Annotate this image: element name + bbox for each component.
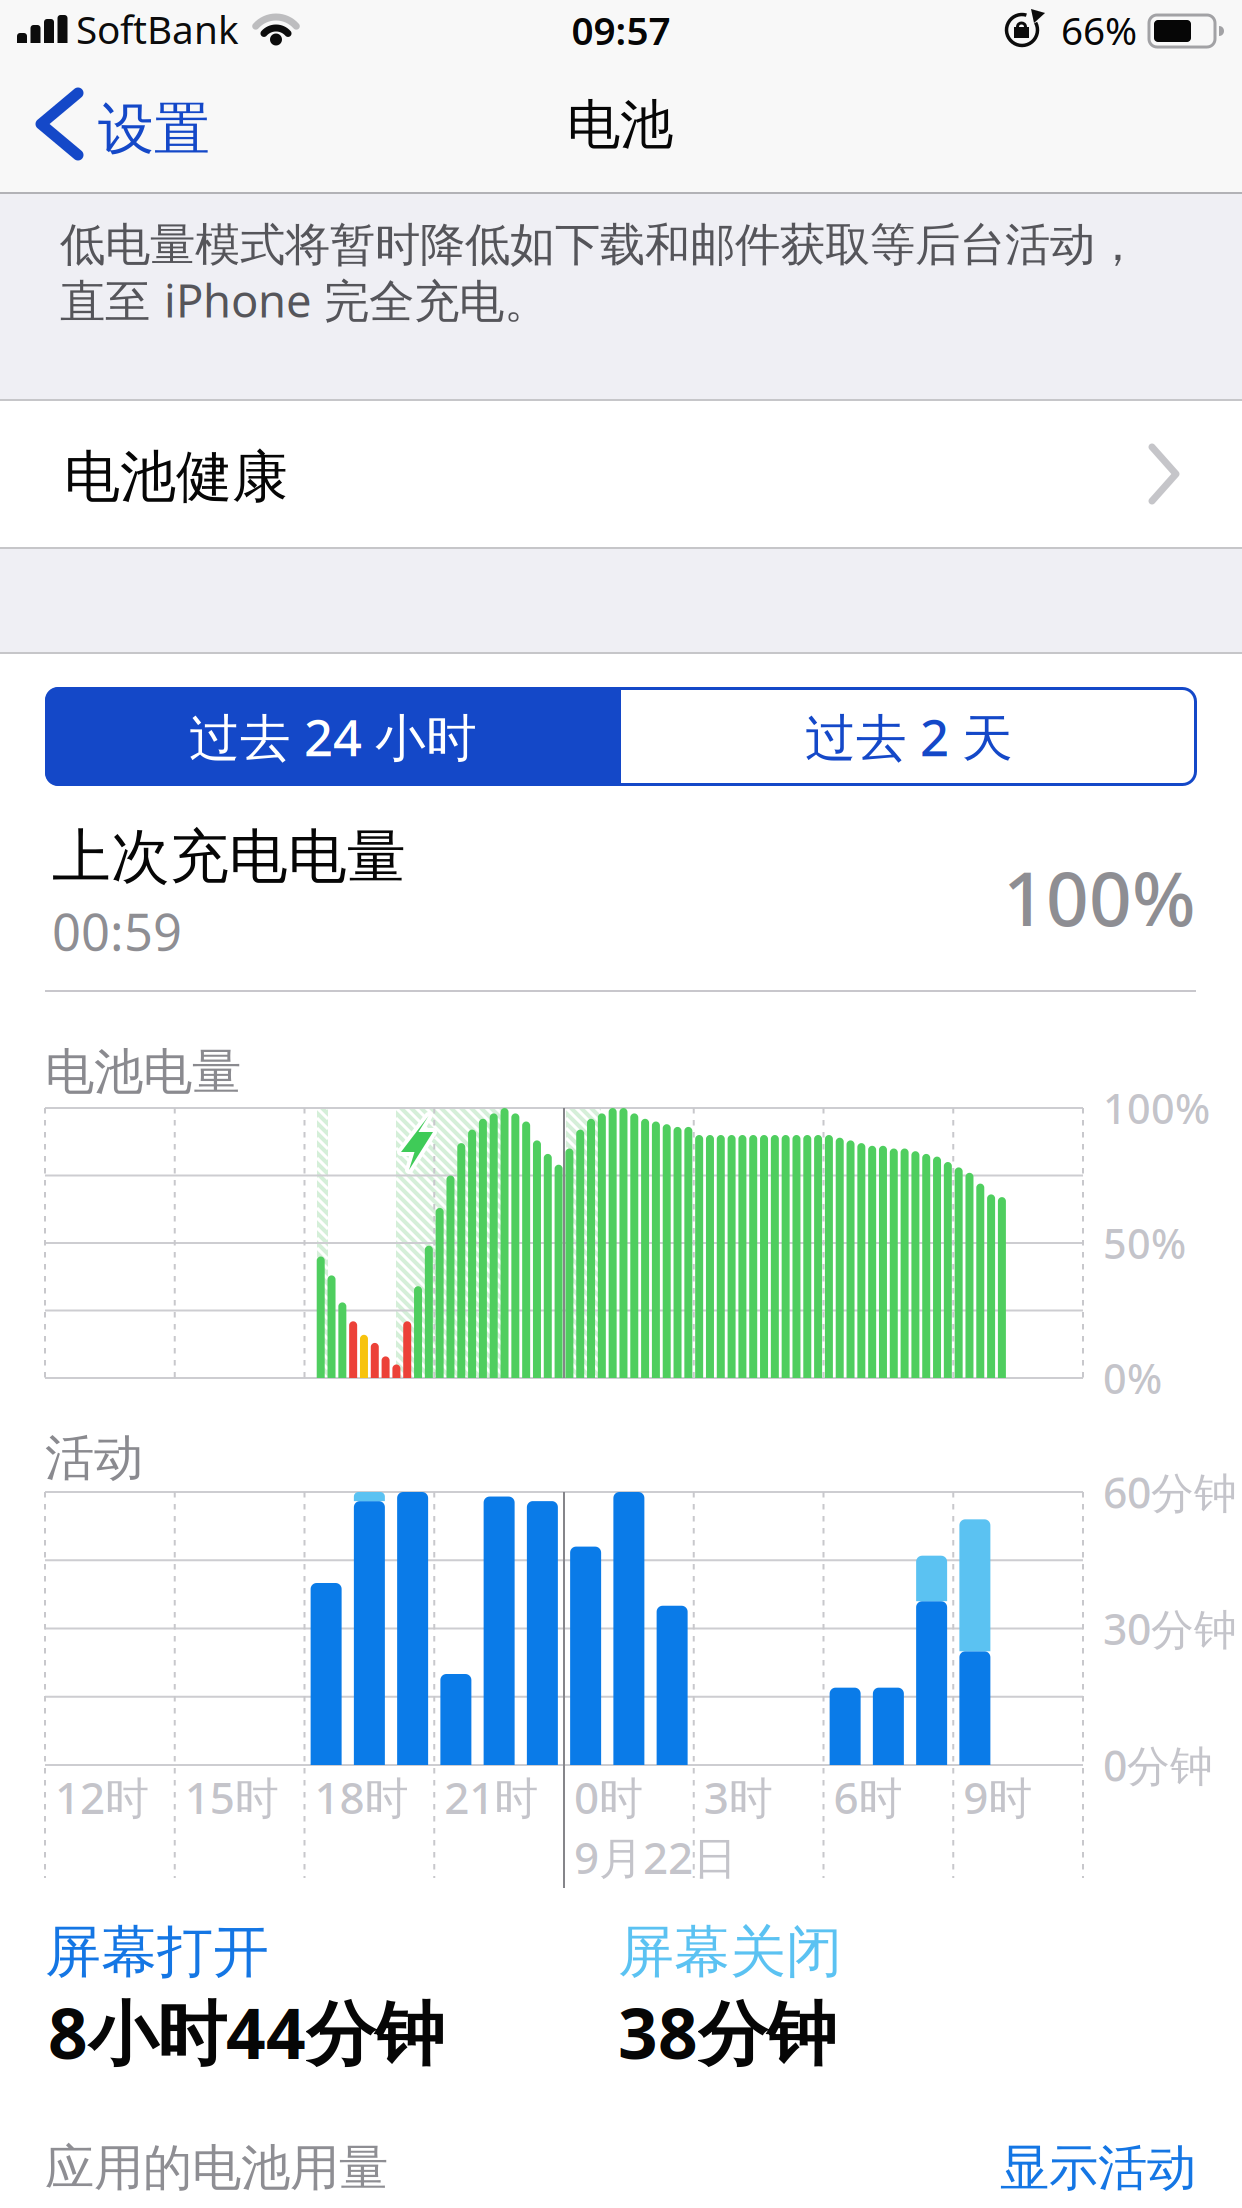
staticText: 15时 [185,1768,279,1826]
staticText: 18时 [314,1768,408,1826]
staticText: 设置 [98,95,210,164]
staticText: 100% [1103,1081,1210,1135]
staticText: 3时 [704,1768,773,1826]
staticText: 100% [1003,847,1196,947]
button[interactable]: 电池健康 [0,401,1242,547]
staticText: 过去 2 天 [805,703,1013,770]
staticText: 电池电量 [45,1042,241,1102]
staticText: 8小时44分钟 [48,1986,444,2078]
staticText: 电池健康 [64,443,288,511]
staticText: 显示活动 [1000,2138,1196,2198]
staticText: 电池 [567,92,673,158]
staticText: 屏幕打开 [45,1918,269,1986]
button[interactable]: 过去 2 天 [621,687,1197,786]
staticText: 66% [1061,4,1137,56]
staticText: 09:57 [571,4,670,56]
staticText: 9时 [963,1768,1032,1826]
staticText: 38分钟 [618,1986,836,2078]
staticText: 低电量模式将暂时降低如下载和邮件获取等后台活动， [60,217,1140,273]
staticText: 过去 24 小时 [189,703,477,770]
staticText: 0时 [574,1768,643,1826]
staticText: 21时 [444,1768,538,1826]
staticText: SoftBank [76,3,239,55]
staticText: 活动 [45,1428,143,1488]
staticText: 屏幕关闭 [618,1918,842,1986]
staticText: 30分钟 [1103,1600,1237,1657]
button[interactable]: 显示活动 [896,2138,1196,2198]
staticText: 0% [1103,1351,1162,1405]
staticText: 应用的电池用量 [45,2138,388,2198]
staticText: 直至 iPhone 完全充电。 [60,270,549,330]
button[interactable]: 设置 [36,91,256,159]
staticText: 9月22日 [574,1828,737,1886]
staticText: 50% [1103,1216,1186,1270]
staticText: 6时 [833,1768,902,1826]
staticText: 0分钟 [1103,1737,1213,1793]
button[interactable]: 过去 24 小时 [45,687,621,786]
staticText: 上次充电电量 [52,821,406,893]
staticText: 12时 [55,1768,149,1826]
staticText: 60分钟 [1103,1464,1237,1520]
staticText: 00:59 [52,897,182,965]
